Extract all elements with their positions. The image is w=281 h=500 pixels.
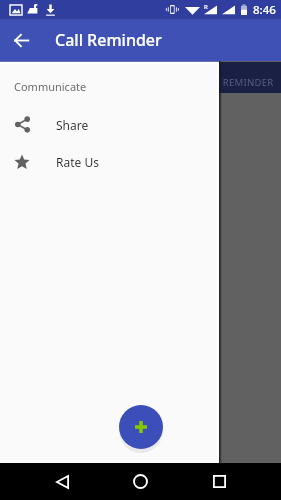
staticText: Share [56,117,89,133]
button[interactable]: Add reminder [119,405,163,449]
button[interactable]: Home [125,463,155,500]
button[interactable]: Rate Us [0,143,219,180]
button[interactable]: Recents [204,463,234,500]
button[interactable]: Back [47,463,77,500]
staticText: R [204,3,208,11]
staticText: CALL REMINDER [197,76,274,89]
staticText: Call Reminder [55,29,162,51]
button[interactable]: Back [0,19,43,61]
staticText: Rate Us [56,154,99,170]
staticText: 8:46 [253,2,276,18]
button[interactable]: Share [0,106,219,143]
staticText: Communicate [14,79,87,94]
